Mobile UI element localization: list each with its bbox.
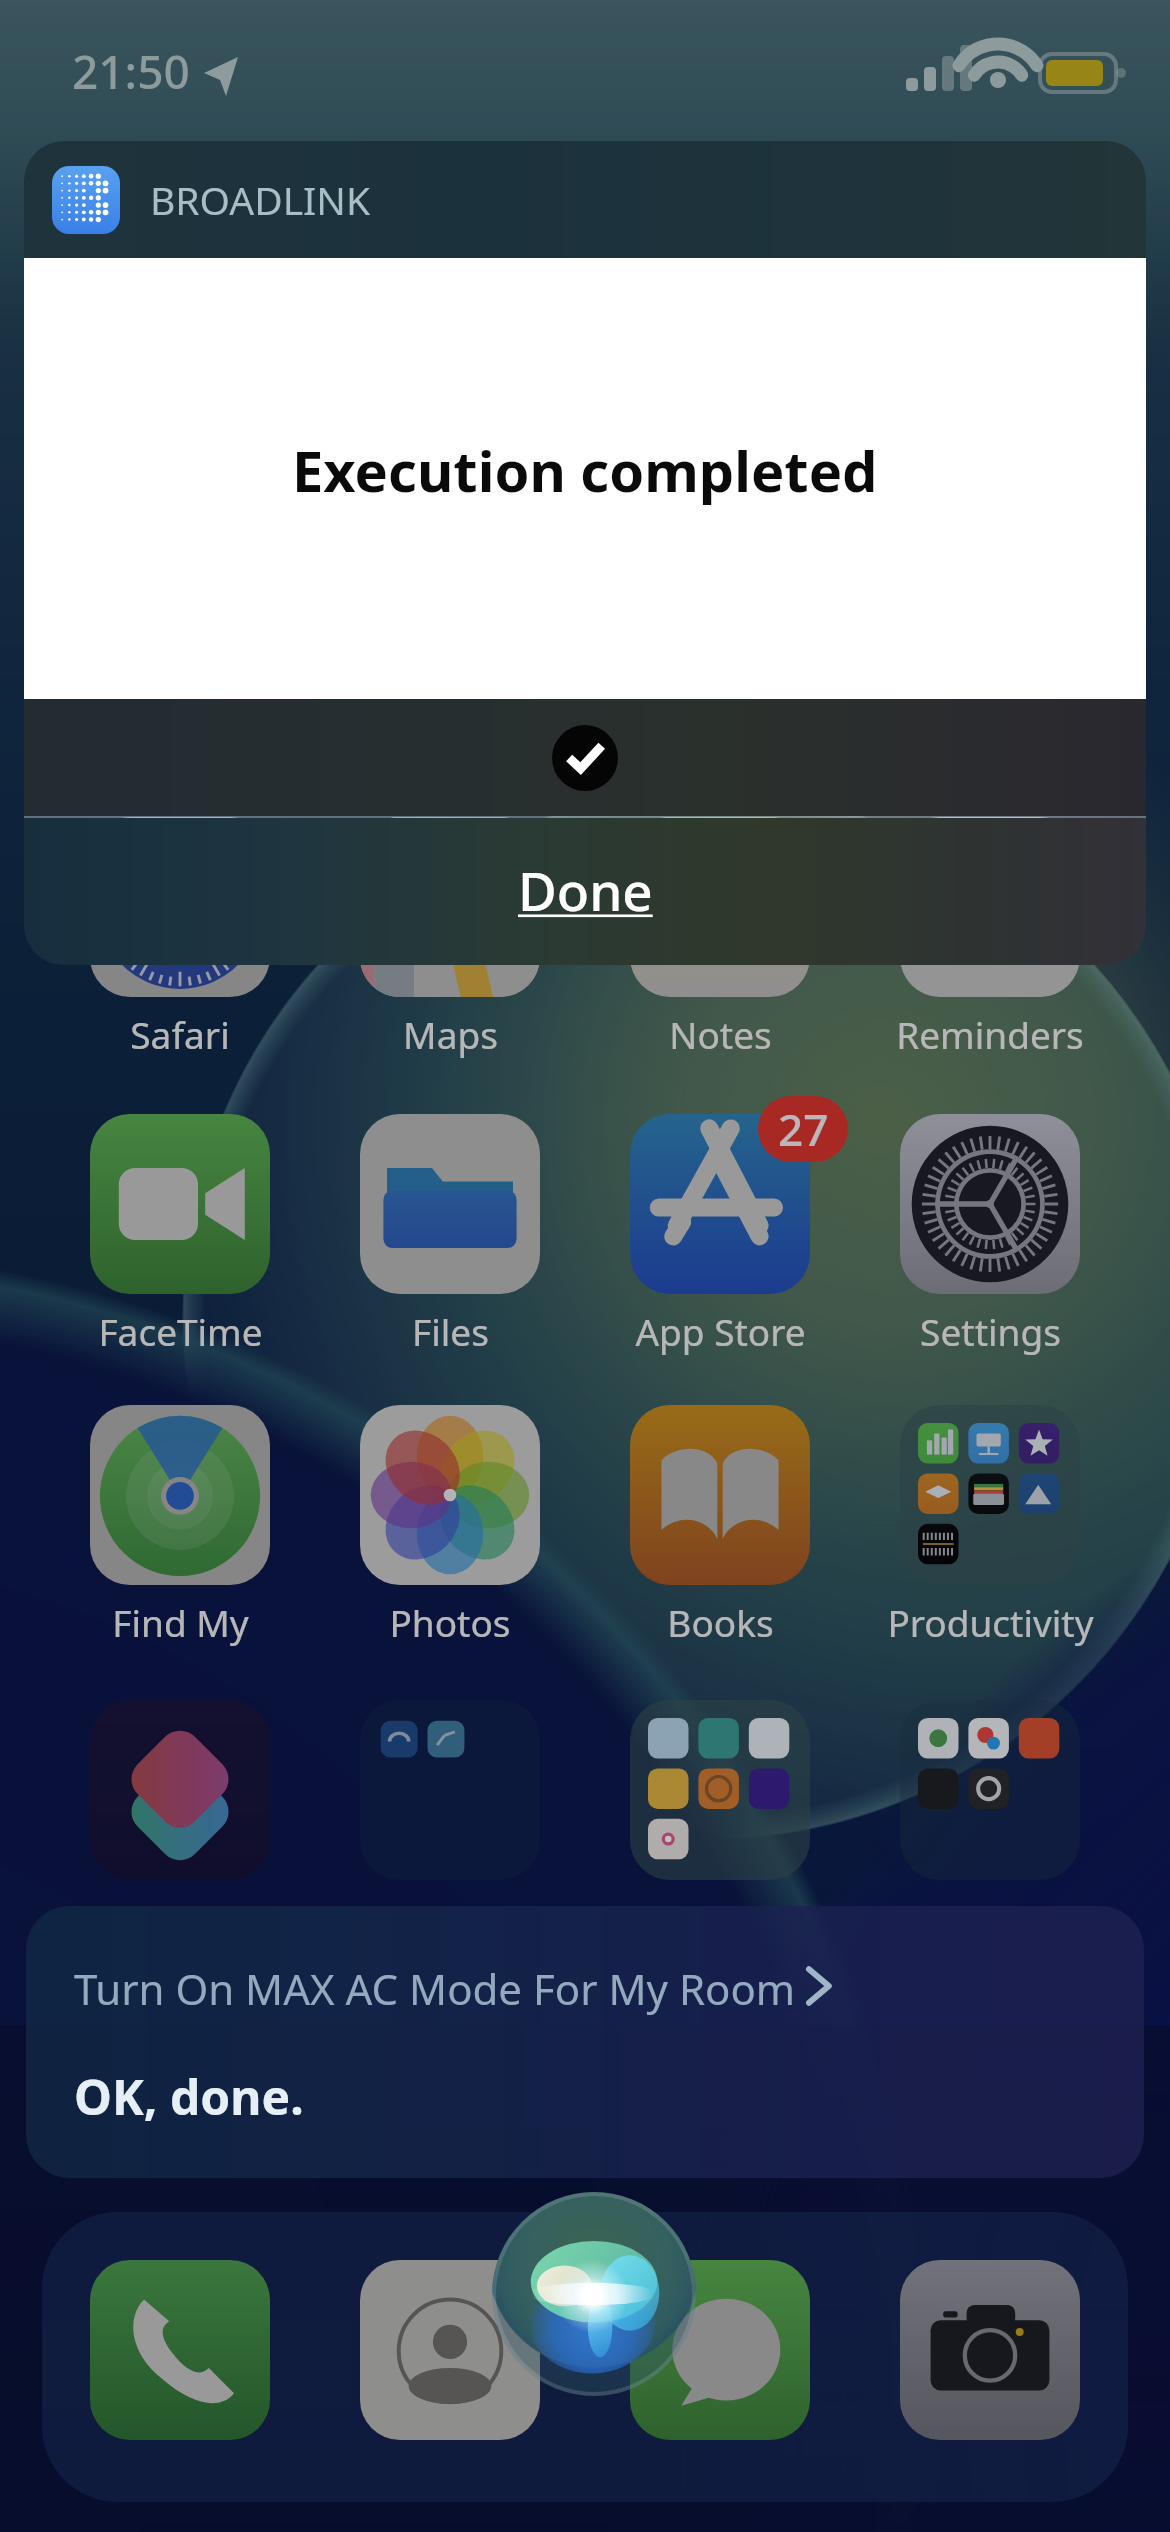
button[interactable]: App Store [570,1114,870,1374]
staticText: Execution completed [292,432,878,508]
button[interactable]: Siri [492,2192,696,2396]
button[interactable]: Done [24,818,1146,965]
staticText: Photos [389,1597,511,1647]
button[interactable]: Reminders [840,817,1140,1077]
button[interactable]: Turn On MAX AC Mode For My Room [26,1906,1144,2178]
staticText: Turn On MAX AC Mode For My Room [74,1960,796,2017]
staticText: Productivity [887,1597,1094,1647]
button[interactable]: Notes [570,817,870,1077]
staticText: Notes [669,1009,772,1059]
staticText: Books [667,1597,774,1647]
staticText: Safari [130,1009,230,1059]
staticText: Done [518,854,653,926]
staticText: Files [412,1306,489,1356]
button[interactable]: Productivity [840,1405,1140,1665]
button[interactable]: App [30,1700,330,1960]
staticText: 21:50 [72,40,190,103]
button[interactable]: Books [570,1405,870,1665]
staticText: Reminders [896,1009,1084,1059]
button[interactable]: Phone [90,2260,270,2440]
button[interactable]: Files [300,1114,600,1374]
staticText: OK, done. [74,2064,304,2129]
button[interactable]: Settings [840,1114,1140,1374]
staticText: Maps [403,1009,498,1059]
staticText: App Store [635,1306,806,1356]
button[interactable]: Messages [630,2260,810,2440]
button[interactable]: Contacts [360,2260,540,2440]
staticText: BROADLINK [150,173,371,226]
staticText: 27 [778,1099,829,1159]
button[interactable]: Photos [300,1405,600,1665]
staticText: Find My [112,1597,249,1647]
button[interactable]: FaceTime [30,1114,330,1374]
button[interactable]: App [300,1700,600,1960]
button[interactable]: Safari [30,817,330,1077]
staticText: FaceTime [98,1306,263,1356]
button[interactable]: Find My [30,1405,330,1665]
button[interactable]: Maps [300,817,600,1077]
button[interactable]: Camera [900,2260,1080,2440]
staticText: Settings [920,1306,1061,1356]
button[interactable]: App [840,1700,1140,1960]
button[interactable]: App [570,1700,870,1960]
